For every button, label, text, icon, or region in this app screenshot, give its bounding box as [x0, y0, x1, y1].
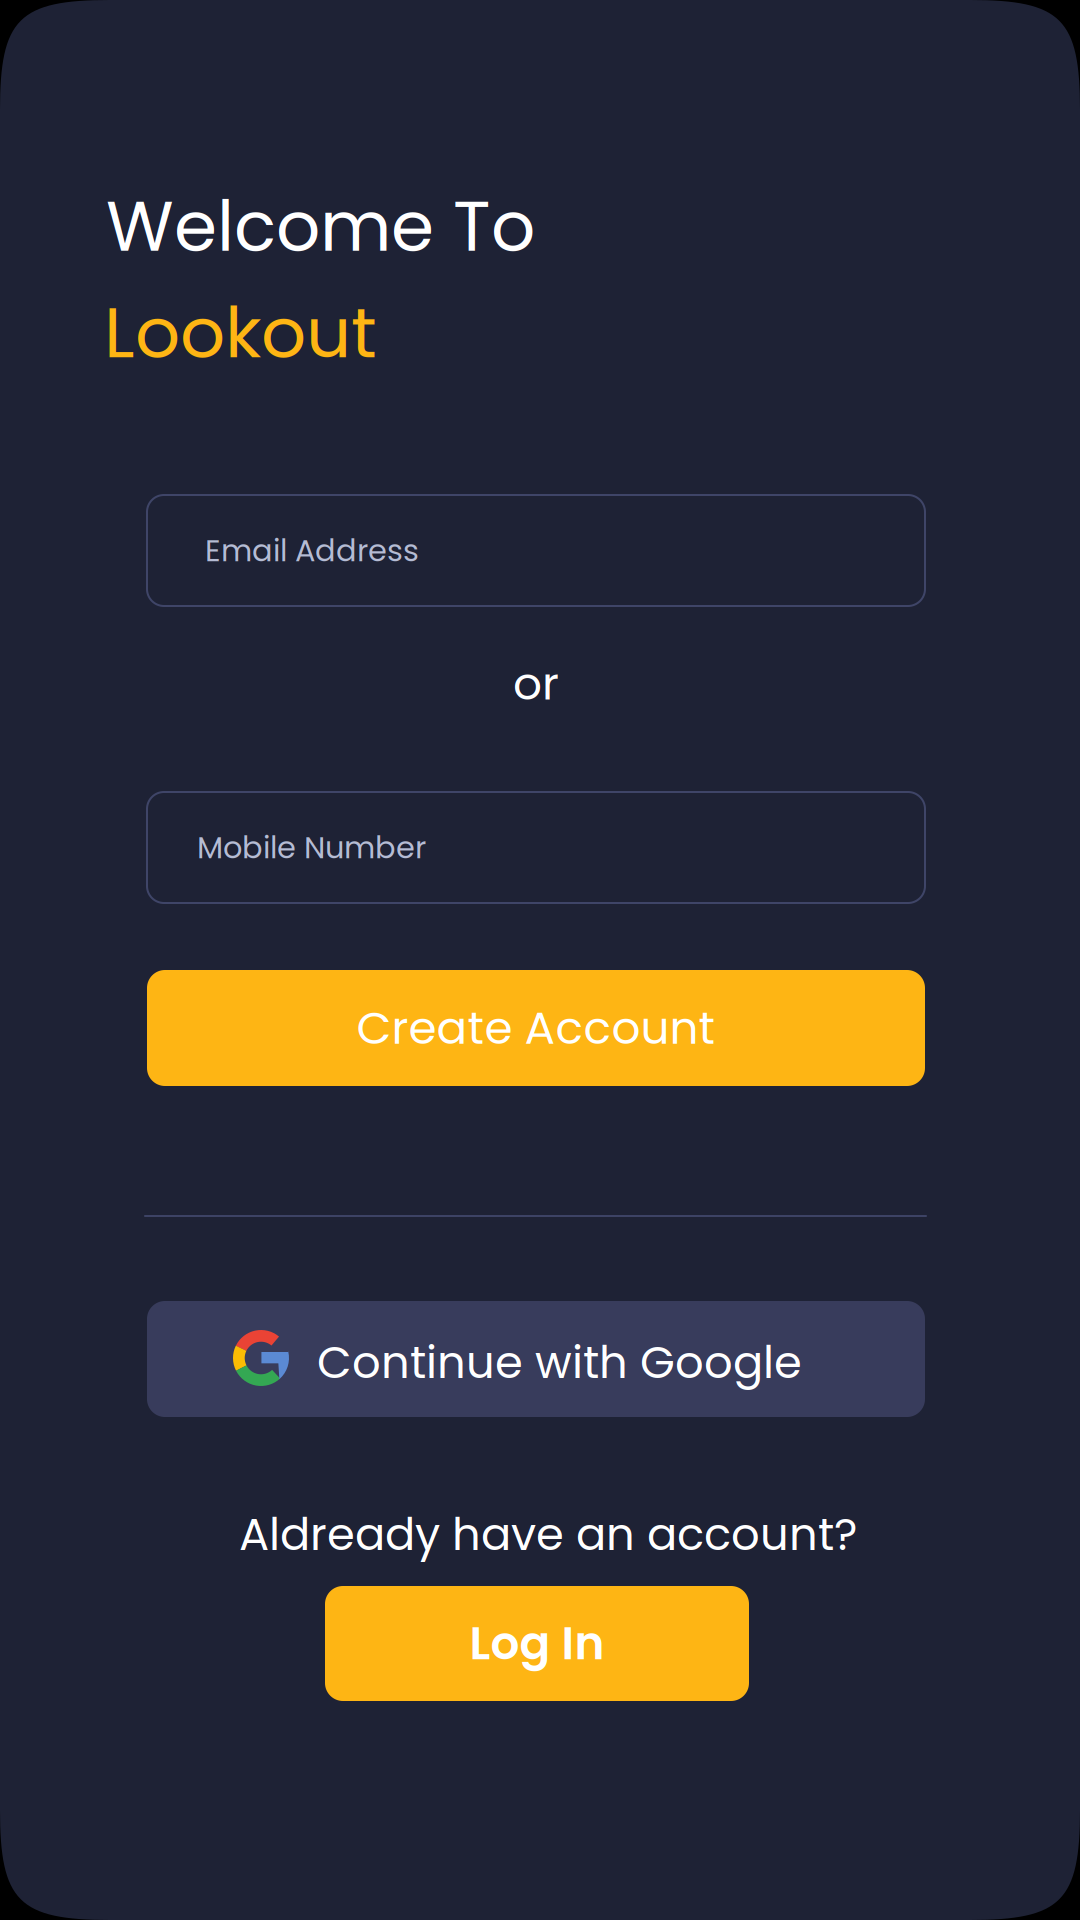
- button[interactable]: Mobile Number: [147, 792, 925, 903]
- button[interactable]: Log In: [325, 1586, 749, 1701]
- staticText: Welcome To: [106, 178, 535, 275]
- button[interactable]: Email Address: [147, 495, 925, 606]
- staticText: Email Address: [205, 529, 419, 572]
- button[interactable]: Continue with Google: [147, 1301, 925, 1417]
- staticText: Lookout: [104, 283, 377, 382]
- staticText: Aldready have an account?: [239, 1503, 857, 1566]
- staticText: or: [513, 652, 559, 715]
- staticText: Log In: [469, 1612, 604, 1675]
- staticText: Continue with Google: [317, 1331, 802, 1394]
- staticText: Create Account: [356, 996, 715, 1060]
- button[interactable]: Create Account: [147, 970, 925, 1086]
- staticText: Mobile Number: [197, 826, 426, 869]
